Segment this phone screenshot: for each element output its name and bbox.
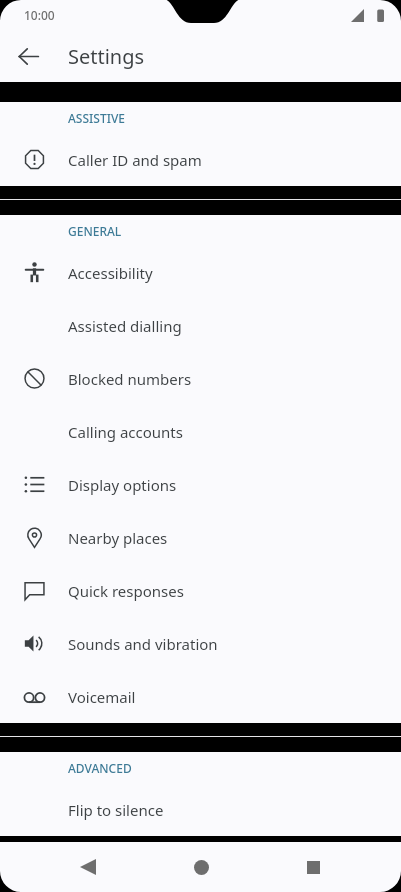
button[interactable]: Voicemail [0, 670, 401, 723]
button[interactable]: Assisted dialling [0, 299, 401, 352]
staticText: Sounds and vibration [68, 634, 218, 654]
button[interactable]: Recents [289, 843, 337, 891]
staticText: Caller ID and spam [68, 150, 202, 170]
staticText: Calling accounts [68, 422, 183, 442]
staticText: Display options [68, 475, 177, 495]
button[interactable]: Back [64, 843, 112, 891]
staticText: Blocked numbers [68, 369, 192, 389]
button[interactable]: Flip to silence [0, 783, 401, 836]
staticText: Flip to silence [68, 800, 164, 820]
button[interactable]: Calling accounts [0, 405, 401, 458]
button[interactable]: Accessibility [0, 246, 401, 299]
button[interactable]: Back [6, 34, 50, 78]
staticText: Accessibility [68, 263, 153, 283]
staticText: GENERAL [68, 223, 122, 239]
button[interactable]: Nearby places [0, 511, 401, 564]
button[interactable]: Home [177, 843, 225, 891]
button[interactable]: Quick responses [0, 564, 401, 617]
button[interactable]: Caller ID and spam [0, 133, 401, 186]
staticText: Nearby places [68, 528, 168, 548]
staticText: ASSISTIVE [68, 110, 125, 126]
staticText: Quick responses [68, 581, 184, 601]
button[interactable]: Sounds and vibration [0, 617, 401, 670]
staticText: Assisted dialling [68, 316, 182, 336]
button[interactable]: Display options [0, 458, 401, 511]
staticText: 10:00 [24, 7, 55, 23]
staticText: Voicemail [68, 687, 136, 707]
staticText: Settings [68, 43, 145, 70]
staticText: ADVANCED [68, 760, 132, 776]
button[interactable]: Blocked numbers [0, 352, 401, 405]
